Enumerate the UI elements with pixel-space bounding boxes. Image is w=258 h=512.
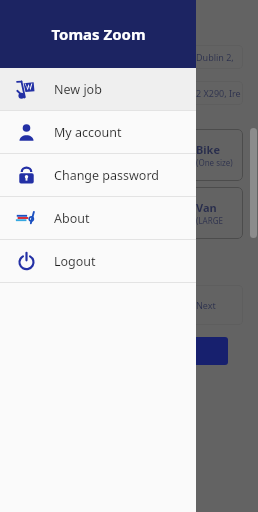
staticText: Dublin 2, D01 <box>196 51 243 63</box>
button[interactable]: Dublin 2, D01 <box>150 45 243 69</box>
button[interactable]: About <box>0 197 196 239</box>
button[interactable]: New job <box>0 68 196 110</box>
button[interactable]: Logout <box>0 240 196 282</box>
staticText: Next <box>196 299 216 311</box>
staticText: About <box>54 210 90 227</box>
button[interactable]: Change password <box>0 154 196 196</box>
button[interactable]: Bike <box>150 129 243 181</box>
button[interactable] <box>155 337 228 365</box>
staticText: Tomas Zoom <box>51 24 146 44</box>
staticText: 2 X290, Ire <box>196 87 241 99</box>
staticText: (LARGE BOX) <box>196 215 243 226</box>
staticText: New job <box>54 81 102 98</box>
button[interactable]: Next <box>150 285 243 325</box>
staticText: My account <box>54 124 122 141</box>
staticText: Bike <box>196 142 220 157</box>
button[interactable]: My account <box>0 111 196 153</box>
button[interactable]: Van <box>150 187 243 239</box>
button[interactable]: 2 X290, Ire <box>150 81 243 105</box>
staticText: Van <box>196 200 217 215</box>
staticText: Change password <box>54 167 160 184</box>
staticText: Logout <box>54 253 96 270</box>
staticText: (One size) <box>196 157 233 168</box>
